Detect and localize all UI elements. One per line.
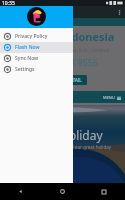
staticText: See all our great holiday <box>60 144 112 150</box>
staticText: IDR 9556 <box>60 56 99 68</box>
button[interactable]: Flash Now <box>0 42 73 53</box>
staticText: Privacy Policy <box>15 33 48 40</box>
button[interactable]: Settings <box>0 64 73 75</box>
button[interactable]: Profile <box>27 7 46 26</box>
button[interactable]: Recent apps <box>83 183 125 200</box>
button[interactable]: More options <box>116 9 123 16</box>
staticText: Settings <box>15 66 35 73</box>
staticText: Sync Now <box>15 55 39 62</box>
staticText: 10:35 <box>2 0 15 6</box>
staticText: Indonesia <box>60 29 115 44</box>
button[interactable]: MENU <box>101 93 123 102</box>
button[interactable]: Sync Now <box>0 53 73 64</box>
button[interactable]: DETAIL <box>62 75 87 85</box>
button[interactable]: Privacy Policy <box>0 31 73 42</box>
staticText: Holiday <box>60 127 103 143</box>
button[interactable]: Home <box>41 183 83 200</box>
staticText: DETAIL <box>67 77 82 83</box>
button[interactable]: Back <box>0 183 41 200</box>
staticText: Jakarta, Bali, Lombok <box>60 47 110 54</box>
staticText: MENU <box>103 95 115 100</box>
staticText: Flash Now <box>15 44 40 51</box>
